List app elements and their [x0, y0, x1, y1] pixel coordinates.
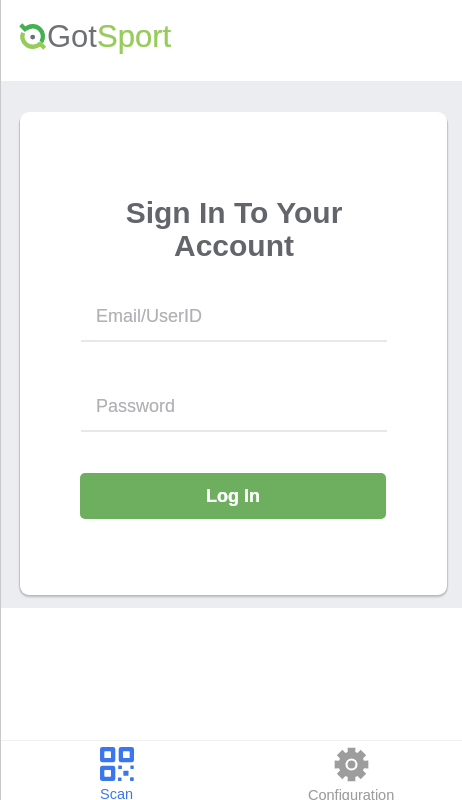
- staticText: Sign In To Your Account: [109, 196, 359, 262]
- staticText: Got: [47, 19, 97, 54]
- button[interactable]: Log In: [80, 473, 386, 519]
- staticText: Password: [96, 396, 176, 416]
- other: Configuration: [334, 747, 369, 782]
- button[interactable]: Email/UserID: [81, 306, 387, 342]
- button[interactable]: Configuration: [235, 740, 462, 800]
- staticText: Sport: [97, 19, 172, 54]
- staticText: Scan: [100, 786, 134, 800]
- button[interactable]: Password: [81, 396, 387, 432]
- staticText: Configuration: [308, 787, 395, 800]
- button[interactable]: Scan: [1, 740, 233, 800]
- other: Scan: [100, 747, 134, 781]
- staticText: Email/UserID: [96, 306, 203, 326]
- staticText: Log In: [206, 486, 260, 506]
